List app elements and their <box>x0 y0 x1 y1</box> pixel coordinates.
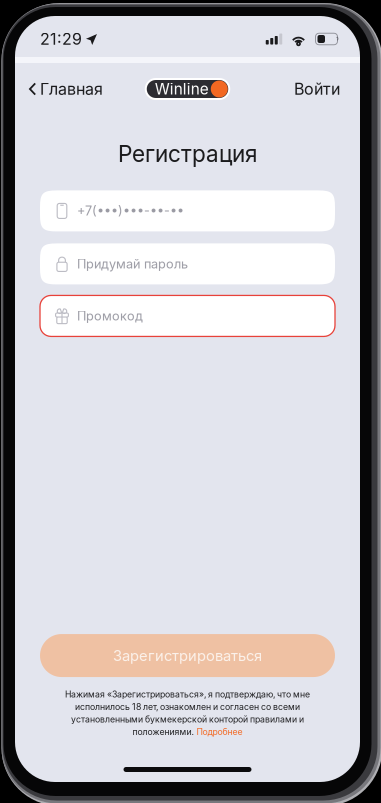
staticText: Промокод <box>77 308 143 324</box>
button[interactable]: Промокод <box>15 295 360 336</box>
staticText: Главная <box>40 79 103 99</box>
button[interactable]: Подробнее <box>196 726 242 737</box>
button[interactable]: Войти <box>294 71 340 107</box>
staticText: установленными букмекерской конторой пра… <box>71 714 304 724</box>
staticText: Подробнее <box>196 726 242 737</box>
staticText: положениями. <box>132 726 193 737</box>
staticText: Зарегистрироваться <box>113 647 262 664</box>
staticText: Нажимая «Зарегистрироваться», я подтверж… <box>65 689 310 700</box>
staticText: Winline <box>155 80 209 98</box>
button[interactable]: Придумай пароль <box>15 243 360 284</box>
staticText: Войти <box>294 79 340 99</box>
button[interactable]: Главная <box>29 71 103 107</box>
button[interactable]: +7(•••)•••-••-•• <box>15 190 360 231</box>
staticText: +7(•••)•••-••-•• <box>77 203 184 219</box>
staticText: Придумай пароль <box>77 256 188 272</box>
staticText: исполнилось 18 лет, ознакомлен и согласе… <box>75 701 300 712</box>
staticText: Регистрация <box>118 140 257 167</box>
button[interactable]: Зарегистрироваться <box>15 634 360 677</box>
staticText: 21:29 <box>40 29 82 49</box>
